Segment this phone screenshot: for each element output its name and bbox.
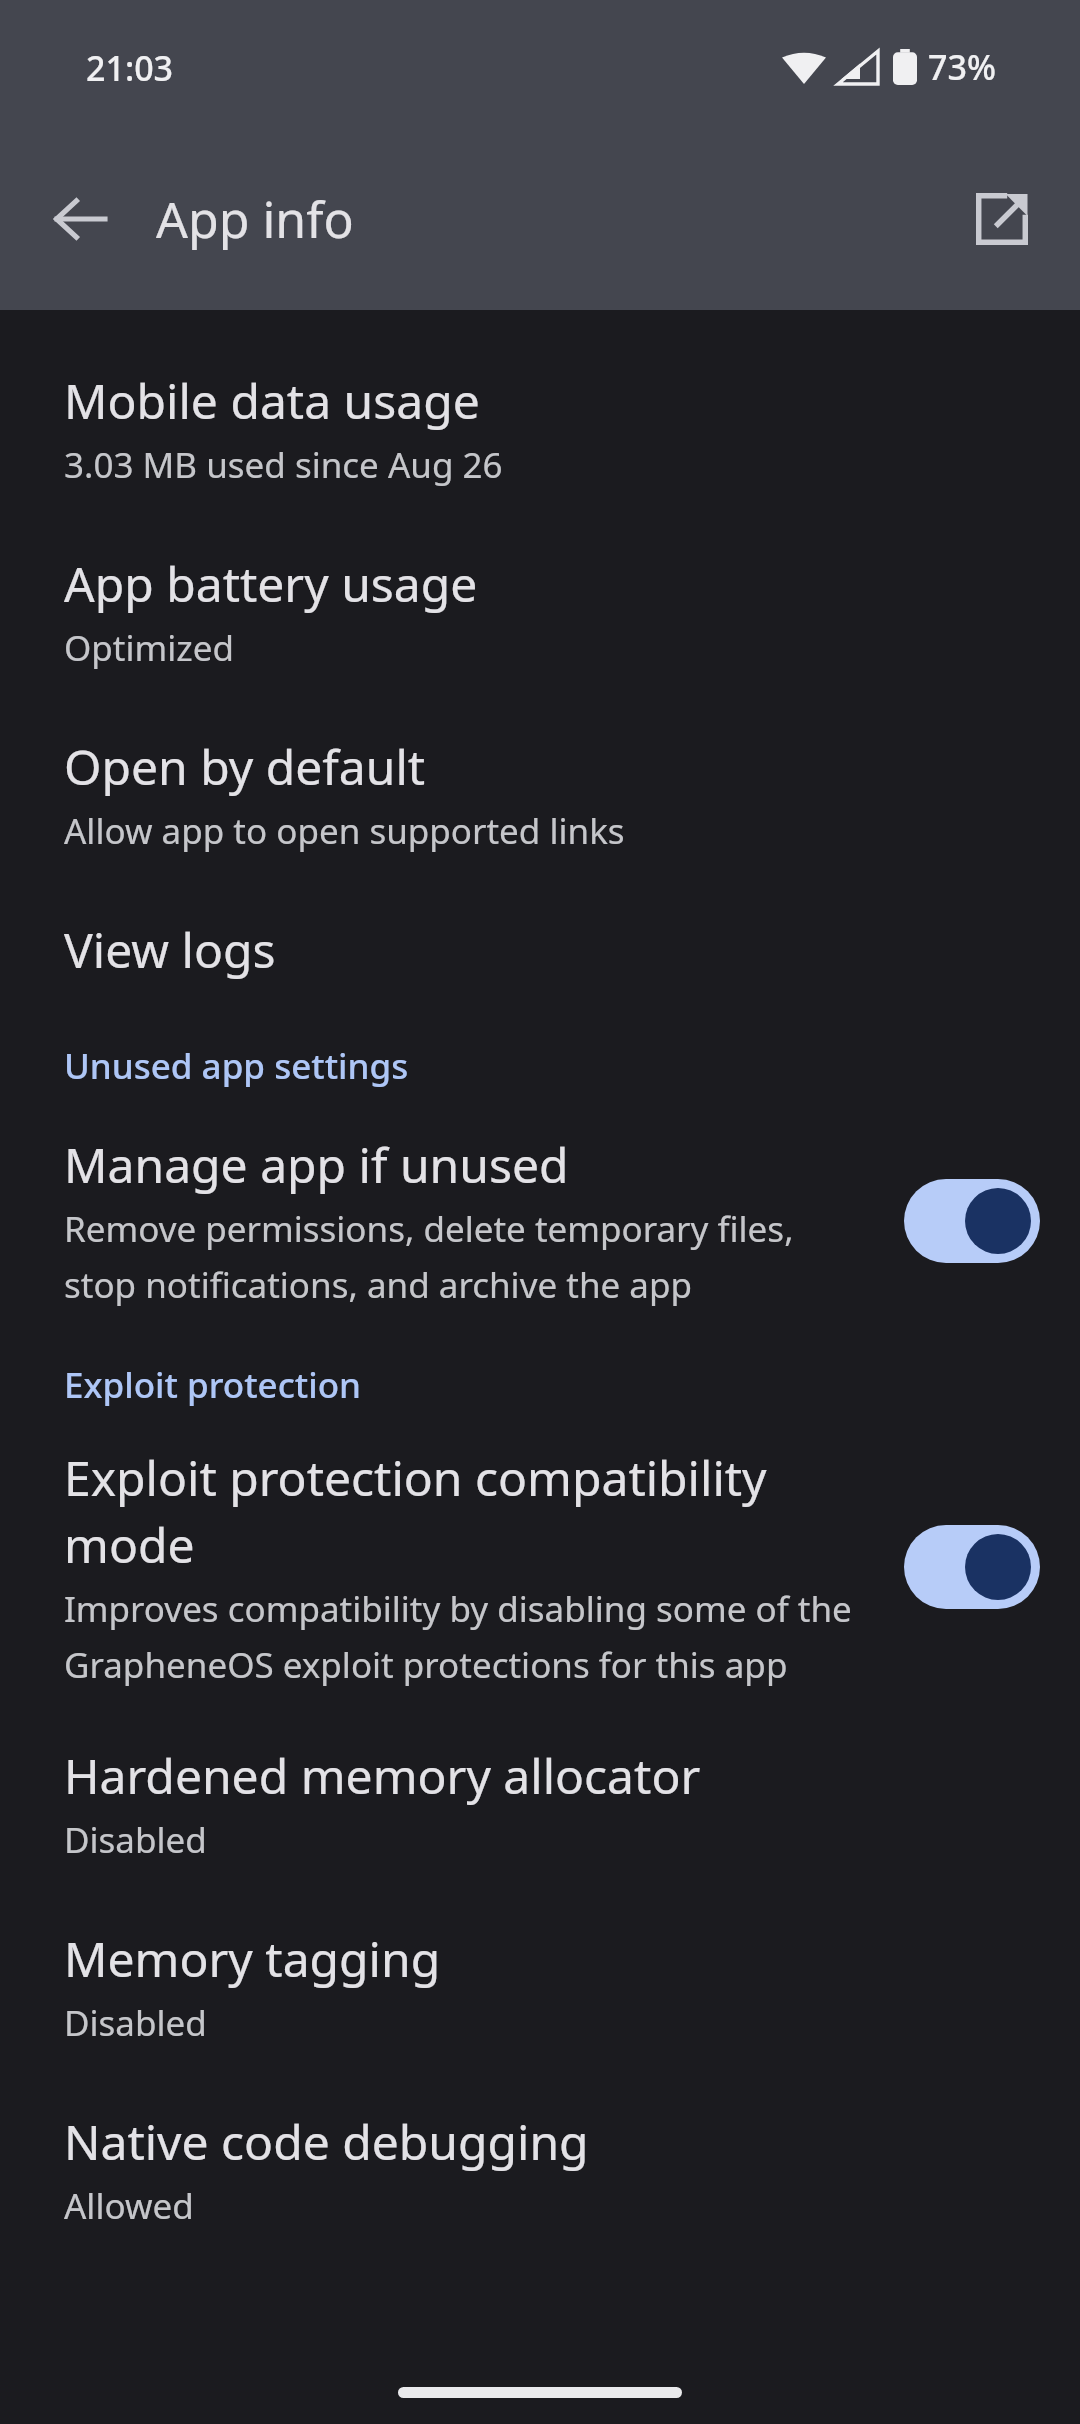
staticText: Disabled <box>64 1999 207 2047</box>
staticText: Mobile data usage <box>64 368 480 433</box>
staticText: Allowed <box>64 2182 194 2230</box>
staticText: Improves compatibility by disabling some… <box>64 1585 852 1633</box>
staticText: Remove permissions, delete temporary fil… <box>64 1205 794 1253</box>
staticText: Native code debugging <box>64 2109 589 2174</box>
staticText: App battery usage <box>64 551 478 616</box>
staticText: Allow app to open supported links <box>64 807 625 855</box>
button[interactable]: Manage app if unused <box>0 1132 1080 1309</box>
staticText: Hardened memory allocator <box>64 1743 701 1808</box>
staticText: mode <box>64 1512 195 1577</box>
staticText: View logs <box>64 917 276 982</box>
staticText: Optimized <box>64 624 234 672</box>
button[interactable]: Back <box>28 167 132 271</box>
staticText: Exploit protection <box>64 1361 362 1409</box>
button[interactable]: Memory tagging <box>0 1926 1080 2047</box>
button[interactable]: Hardened memory allocator <box>0 1743 1080 1864</box>
staticText: stop notifications, and archive the app <box>64 1261 693 1309</box>
staticText: 21:03 <box>86 45 174 91</box>
button[interactable]: Toggle setting <box>904 1525 1040 1609</box>
staticText: 73% <box>928 44 996 90</box>
staticText: Manage app if unused <box>64 1132 569 1197</box>
staticText: Disabled <box>64 1816 207 1864</box>
button[interactable]: Open by default <box>0 734 1080 855</box>
button[interactable]: Mobile data usage <box>0 368 1080 489</box>
staticText: Memory tagging <box>64 1926 441 1991</box>
button[interactable]: Toggle setting <box>904 1179 1040 1263</box>
staticText: 3.03 MB used since Aug 26 <box>64 441 503 489</box>
button[interactable]: App battery usage <box>0 551 1080 672</box>
button[interactable]: Exploit protection compatibility <box>0 1445 1080 1689</box>
button[interactable]: Open in new window <box>950 167 1054 271</box>
staticText: Exploit protection compatibility <box>64 1445 767 1510</box>
button[interactable]: Native code debugging <box>0 2109 1080 2230</box>
staticText: App info <box>156 185 354 253</box>
button[interactable]: View logs <box>0 917 1080 982</box>
staticText: Open by default <box>64 734 426 799</box>
staticText: GrapheneOS exploit protections for this … <box>64 1641 788 1689</box>
staticText: Unused app settings <box>64 1042 409 1090</box>
